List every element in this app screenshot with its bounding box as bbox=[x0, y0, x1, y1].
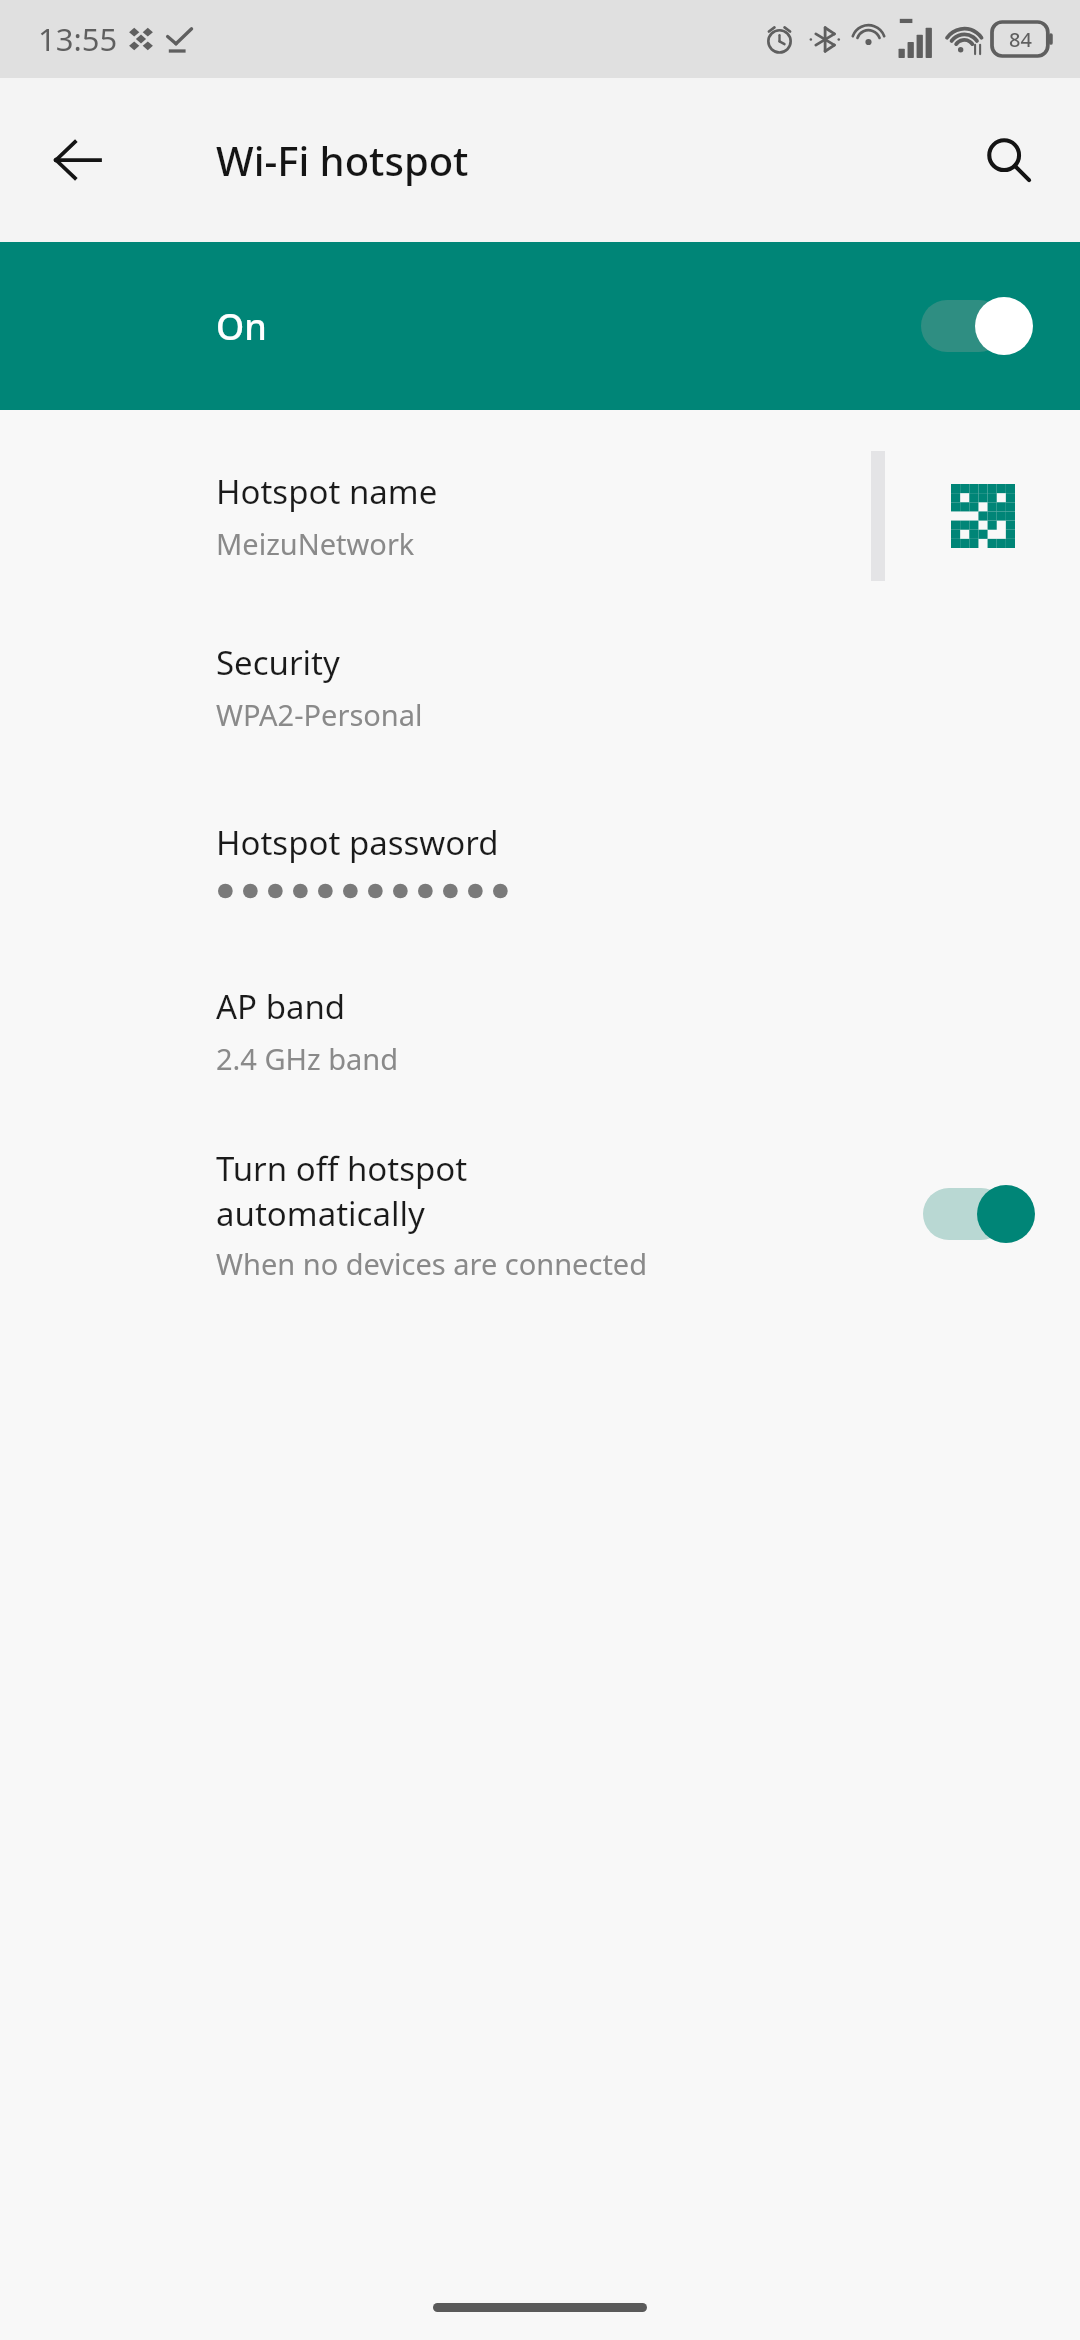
staticText: 84 bbox=[1009, 26, 1032, 53]
button[interactable]: AP band bbox=[0, 948, 1080, 1114]
staticText: WPA2-Personal bbox=[216, 695, 423, 734]
button[interactable]: Search bbox=[966, 118, 1050, 202]
button[interactable]: On bbox=[0, 242, 1080, 410]
staticText: 13:55 bbox=[38, 18, 118, 60]
staticText: When no devices are connected bbox=[216, 1244, 648, 1283]
staticText: Security bbox=[216, 640, 340, 685]
staticText: Turn off hotspot bbox=[216, 1146, 468, 1191]
staticText: AP band bbox=[216, 984, 346, 1029]
staticText: 2.4 GHz band bbox=[216, 1039, 399, 1078]
button[interactable] bbox=[923, 1185, 1036, 1243]
staticText: MeizuNetwork bbox=[216, 524, 415, 563]
staticText: Hotspot password bbox=[216, 820, 499, 865]
button[interactable]: Hotspot password bbox=[0, 770, 1080, 948]
staticText: Wi-Fi hotspot bbox=[216, 133, 469, 187]
button[interactable]: Turn off hotspot bbox=[0, 1114, 1080, 1314]
staticText: On bbox=[216, 302, 267, 351]
button[interactable] bbox=[921, 297, 1034, 355]
button[interactable]: Hotspot name bbox=[0, 428, 1080, 604]
button[interactable]: Share hotspot QR code bbox=[885, 428, 1080, 604]
button[interactable]: Back bbox=[36, 118, 120, 202]
button[interactable]: Security bbox=[0, 604, 1080, 770]
staticText: Hotspot name bbox=[216, 469, 438, 514]
staticText: automatically bbox=[216, 1191, 425, 1236]
